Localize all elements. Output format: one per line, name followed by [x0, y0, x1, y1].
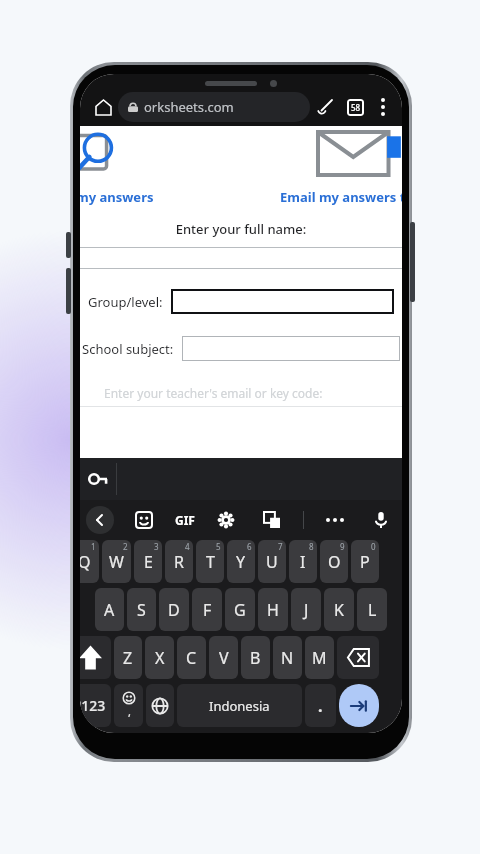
- button[interactable]: J: [291, 588, 321, 631]
- button[interactable]: Y: [227, 540, 255, 583]
- button[interactable]: [182, 336, 400, 361]
- staticText: L: [368, 599, 377, 621]
- staticText: V: [219, 647, 229, 669]
- staticText: A: [104, 599, 115, 621]
- staticText: 58: [351, 102, 361, 113]
- button[interactable]: Q: [80, 540, 99, 583]
- button[interactable]: Share: [310, 92, 340, 122]
- button[interactable]: Tabs: [340, 92, 370, 122]
- button[interactable]: G: [225, 588, 255, 631]
- staticText: Group/level:: [88, 293, 163, 311]
- button[interactable]: Indonesia: [177, 684, 302, 727]
- staticText: 4: [185, 541, 190, 552]
- button[interactable]: F: [192, 588, 222, 631]
- staticText: C: [186, 647, 197, 669]
- button[interactable]: I: [289, 540, 317, 583]
- staticText: M: [312, 647, 327, 669]
- staticText: T: [206, 551, 215, 573]
- staticText: E: [144, 551, 153, 573]
- button[interactable]: Shift: [80, 636, 111, 679]
- staticText: 8: [309, 541, 314, 552]
- staticText: Enter your full name:: [80, 220, 402, 238]
- button[interactable]: Emoji: [114, 684, 143, 727]
- button[interactable]: A: [95, 588, 124, 631]
- button[interactable]: More options: [370, 94, 396, 120]
- button[interactable]: B: [241, 636, 270, 679]
- staticText: 3: [154, 541, 159, 552]
- button[interactable]: R: [165, 540, 193, 583]
- button[interactable]: U: [258, 540, 286, 583]
- button[interactable]: Backspace: [337, 636, 379, 679]
- staticText: 0: [371, 541, 376, 552]
- button[interactable]: C: [177, 636, 206, 679]
- button[interactable]: S: [127, 588, 156, 631]
- staticText: F: [203, 599, 212, 621]
- button[interactable]: .: [305, 684, 336, 727]
- staticText: K: [334, 599, 344, 621]
- staticText: Email my answers to: [280, 188, 402, 206]
- staticText: my answers: [80, 188, 154, 206]
- staticText: Z: [123, 647, 133, 669]
- staticText: Y: [236, 551, 246, 573]
- staticText: N: [281, 647, 294, 669]
- staticText: 7: [278, 541, 283, 552]
- staticText: W: [109, 551, 124, 573]
- button[interactable]: N: [273, 636, 302, 679]
- button[interactable]: M: [305, 636, 334, 679]
- staticText: D: [168, 599, 180, 621]
- staticText: GIF: [175, 512, 195, 528]
- button[interactable]: Translate: [257, 505, 287, 535]
- button[interactable]: Home: [88, 92, 118, 122]
- staticText: 9: [340, 541, 345, 552]
- button[interactable]: Passwords: [80, 458, 116, 500]
- staticText: 5: [216, 541, 221, 552]
- staticText: Indonesia: [209, 697, 270, 715]
- button[interactable]: Enter: [339, 684, 379, 727]
- button[interactable]: H: [258, 588, 288, 631]
- button[interactable]: Back: [86, 506, 114, 534]
- staticText: 2: [123, 541, 128, 552]
- staticText: P: [360, 551, 370, 573]
- button[interactable]: orksheets.com: [118, 92, 310, 122]
- button[interactable]: L: [357, 588, 387, 631]
- staticText: U: [266, 551, 278, 573]
- button[interactable]: Change language: [146, 684, 174, 727]
- staticText: R: [174, 551, 184, 573]
- staticText: .: [318, 695, 323, 717]
- button[interactable]: E: [134, 540, 162, 583]
- button[interactable]: W: [102, 540, 131, 583]
- staticText: ?123: [80, 696, 106, 715]
- staticText: Enter your teacher's email or key code:: [104, 385, 402, 401]
- button[interactable]: More: [320, 512, 350, 528]
- staticText: orksheets.com: [144, 98, 234, 116]
- staticText: B: [250, 647, 261, 669]
- staticText: X: [155, 647, 165, 669]
- button[interactable]: V: [209, 636, 238, 679]
- button[interactable]: O: [320, 540, 348, 583]
- button[interactable]: T: [196, 540, 224, 583]
- staticText: ,: [128, 704, 131, 719]
- button[interactable]: K: [324, 588, 354, 631]
- staticText: 1: [91, 541, 96, 552]
- button[interactable]: Stickers: [129, 505, 159, 535]
- button[interactable]: X: [145, 636, 174, 679]
- button[interactable]: D: [159, 588, 189, 631]
- staticText: H: [267, 599, 279, 621]
- button[interactable]: Z: [114, 636, 142, 679]
- staticText: O: [328, 551, 341, 573]
- staticText: Q: [80, 551, 91, 573]
- staticText: I: [300, 551, 306, 573]
- button[interactable]: P: [351, 540, 379, 583]
- button[interactable]: ?123: [80, 684, 111, 727]
- button[interactable]: [171, 289, 394, 314]
- staticText: J: [304, 599, 309, 621]
- staticText: S: [137, 599, 146, 621]
- staticText: G: [234, 599, 246, 621]
- staticText: 6: [247, 541, 252, 552]
- staticText: School subject:: [82, 340, 174, 358]
- button[interactable]: Settings: [211, 505, 241, 535]
- button[interactable]: Voice input: [366, 505, 396, 535]
